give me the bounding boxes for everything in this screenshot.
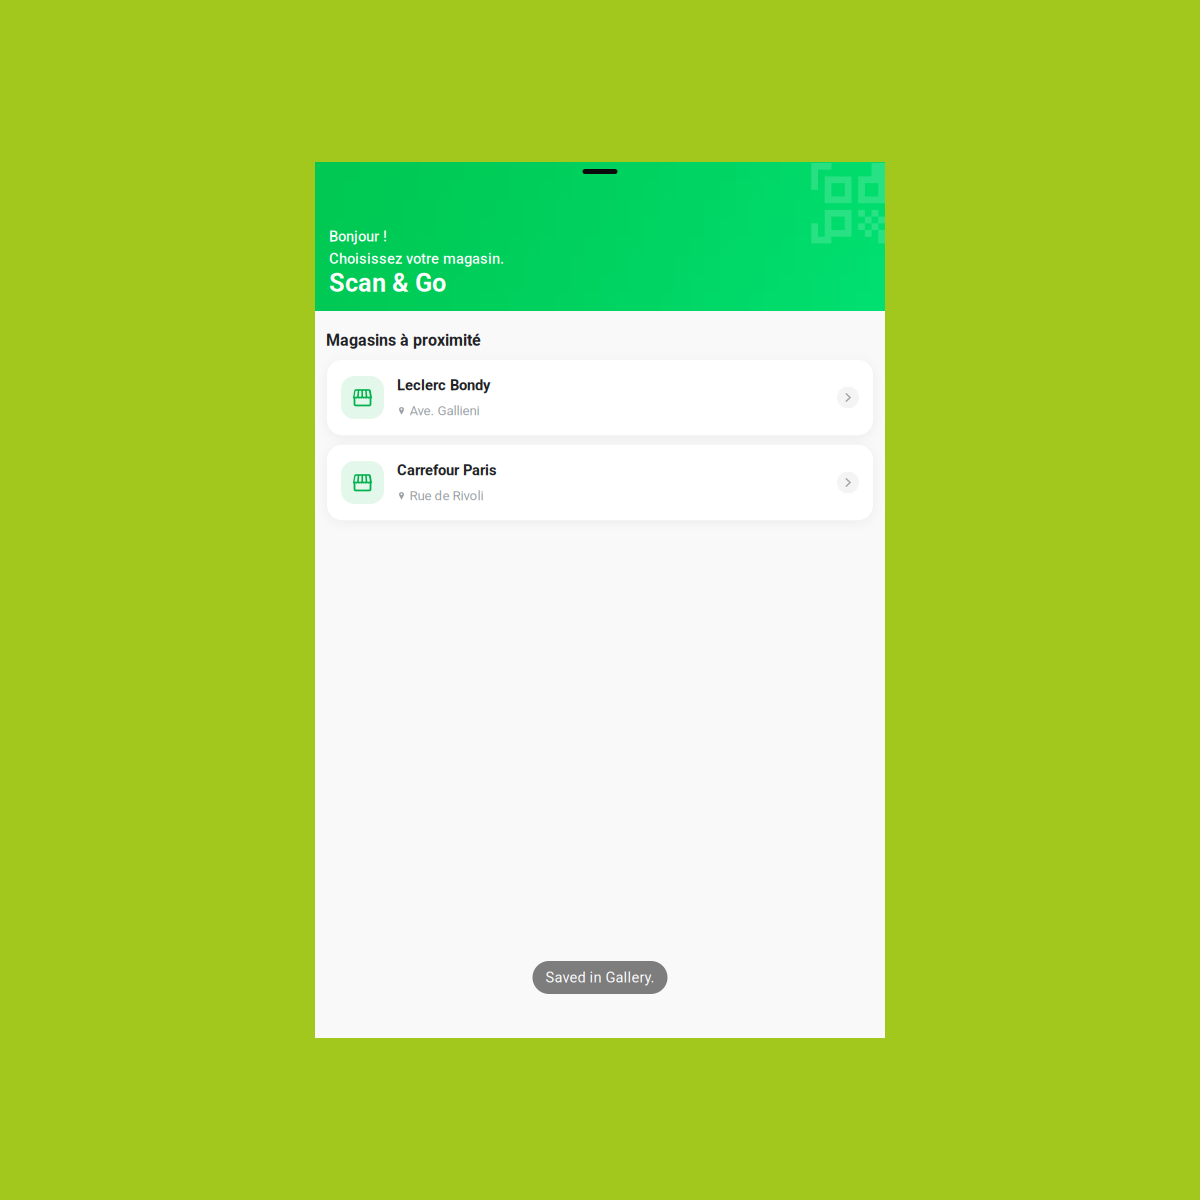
staticText: Magasins à proximité (326, 331, 481, 350)
staticText: Carrefour Paris (397, 462, 497, 479)
staticText: Bonjour ! (329, 228, 387, 245)
staticText: Saved in Gallery. (545, 969, 654, 986)
staticText: Scan & Go (329, 268, 446, 298)
button[interactable]: Leclerc Bondy (327, 360, 873, 435)
staticText: Rue de Rivoli (409, 488, 483, 503)
button[interactable]: Carrefour Paris (327, 445, 873, 520)
staticText: Ave. Gallieni (409, 403, 479, 418)
staticText: Leclerc Bondy (397, 377, 490, 394)
staticText: Choisissez votre magasin. (329, 250, 504, 267)
